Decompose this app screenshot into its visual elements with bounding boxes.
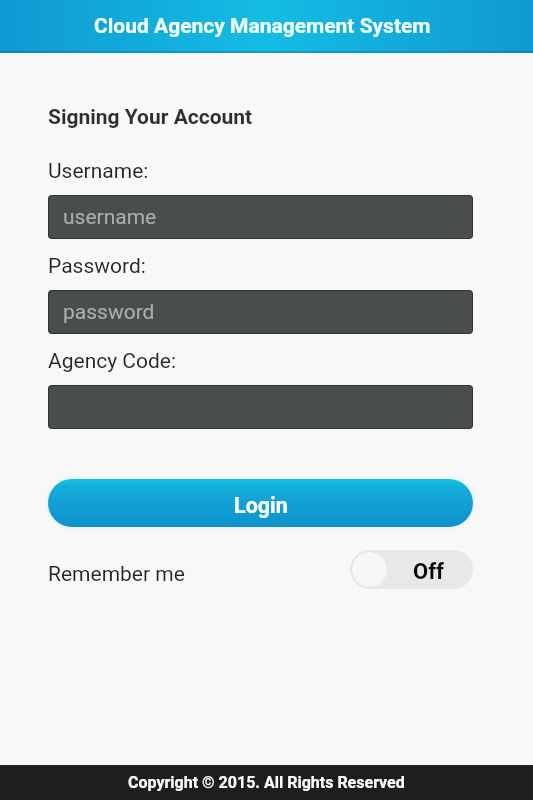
staticText: password <box>63 300 155 325</box>
staticText: Agency Code: <box>48 349 177 374</box>
staticText: Remember me <box>48 562 185 587</box>
staticText: Login <box>234 493 288 518</box>
staticText: Copyright © 2015. All Rights Reserved <box>128 773 405 792</box>
button[interactable]: Login <box>48 479 473 527</box>
staticText: Cloud Agency Management System <box>94 14 431 39</box>
button[interactable]: Agency Code <box>48 385 473 429</box>
staticText: username <box>63 205 157 230</box>
staticText: Password: <box>48 254 146 279</box>
button[interactable]: Password <box>48 290 473 334</box>
staticText: Off <box>384 559 473 585</box>
button[interactable]: Remember me toggle, Off <box>350 550 473 589</box>
staticText: Username: <box>48 159 149 184</box>
staticText: Signing Your Account <box>48 105 253 130</box>
button[interactable]: Username <box>48 195 473 239</box>
